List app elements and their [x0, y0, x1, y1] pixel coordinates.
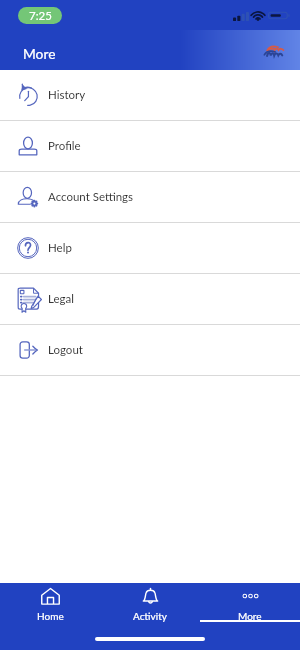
staticText: Logout: [48, 343, 83, 357]
staticText: History: [48, 88, 86, 102]
button[interactable]: Logout: [0, 325, 300, 375]
button[interactable]: Profile: [0, 121, 300, 171]
button[interactable]: Legal: [0, 274, 300, 324]
other: Brand logo: [262, 45, 285, 57]
button[interactable]: History: [0, 70, 300, 120]
button[interactable]: Home: [0, 583, 100, 650]
button[interactable]: Account Settings: [0, 172, 300, 222]
staticText: Legal: [48, 292, 74, 306]
staticText: Activity: [133, 610, 167, 622]
staticText: Profile: [48, 139, 81, 153]
staticText: Help: [48, 241, 72, 255]
staticText: Home: [37, 610, 64, 622]
staticText: 7:25: [29, 9, 52, 23]
staticText: Account Settings: [48, 190, 134, 204]
staticText: More: [23, 45, 56, 62]
button[interactable]: Help: [0, 223, 300, 273]
staticText: More: [238, 610, 262, 622]
button[interactable]: Activity: [100, 583, 200, 650]
button[interactable]: More: [200, 583, 300, 650]
